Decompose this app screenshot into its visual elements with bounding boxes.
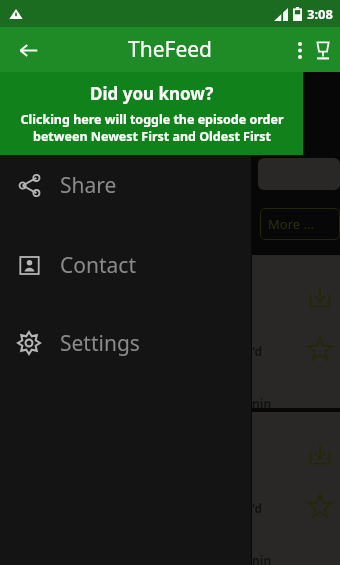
staticText: Settings [60,329,140,358]
button[interactable]: More options [292,32,308,68]
button[interactable]: Share [0,162,251,208]
staticText: Share [60,171,117,200]
button[interactable]: Contact [0,242,251,288]
button[interactable]: 'd [252,255,340,408]
button[interactable]: Did you know? [0,72,303,155]
button[interactable] [258,158,340,190]
staticText: Did you know? [90,82,214,105]
staticText: nin [252,552,272,565]
button[interactable]: Sort order [308,32,338,68]
staticText: Contact [60,251,136,280]
button[interactable]: Settings [0,320,251,366]
staticText: 3:08 [307,5,333,23]
staticText: 'd [252,343,263,359]
staticText: Clicking here will toggle the episode or… [20,111,284,144]
button[interactable]: Back [10,32,46,68]
staticText: nin [252,395,272,411]
staticText: More ... [268,215,314,233]
staticText: TheFeed [128,35,212,64]
staticText: 'd [252,500,263,516]
button[interactable]: 'd [252,412,340,565]
button[interactable]: More ... [260,208,340,240]
